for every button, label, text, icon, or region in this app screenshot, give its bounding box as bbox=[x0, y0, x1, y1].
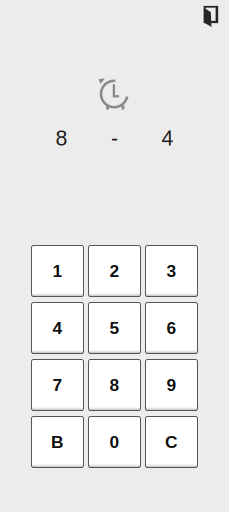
button[interactable]: 1 bbox=[31, 245, 84, 297]
staticText: B bbox=[51, 432, 64, 452]
button[interactable]: Exit bbox=[192, 0, 229, 37]
staticText: 0 bbox=[109, 432, 119, 452]
button[interactable]: B bbox=[31, 416, 84, 468]
staticText: 8 bbox=[109, 375, 119, 395]
staticText: 4 bbox=[161, 126, 173, 150]
staticText: 8 bbox=[55, 126, 67, 150]
button[interactable]: 2 bbox=[88, 245, 141, 297]
staticText: - bbox=[111, 126, 118, 150]
button[interactable]: 3 bbox=[145, 245, 198, 297]
staticText: 2 bbox=[109, 261, 119, 281]
staticText: 4 bbox=[52, 318, 62, 338]
button[interactable]: 5 bbox=[88, 302, 141, 354]
staticText: 6 bbox=[166, 318, 176, 338]
button[interactable]: 9 bbox=[145, 359, 198, 411]
staticText: 3 bbox=[166, 261, 176, 281]
button[interactable]: 8 bbox=[88, 359, 141, 411]
staticText: 7 bbox=[52, 375, 62, 395]
staticText: 9 bbox=[166, 375, 176, 395]
staticText: 5 bbox=[109, 318, 119, 338]
staticText: 1 bbox=[52, 261, 62, 281]
button[interactable]: 7 bbox=[31, 359, 84, 411]
button[interactable]: 6 bbox=[145, 302, 198, 354]
staticText: C bbox=[165, 432, 178, 452]
button[interactable]: 0 bbox=[88, 416, 141, 468]
button[interactable]: C bbox=[145, 416, 198, 468]
button[interactable]: 4 bbox=[31, 302, 84, 354]
